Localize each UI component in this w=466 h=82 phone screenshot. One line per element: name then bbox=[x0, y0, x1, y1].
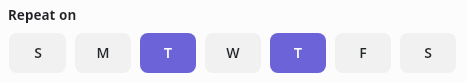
staticText: M bbox=[96, 43, 110, 62]
staticText: S bbox=[424, 43, 432, 62]
staticText: W bbox=[226, 43, 240, 62]
button[interactable]: Saturday, not selected bbox=[400, 33, 456, 73]
button[interactable]: Thursday, selected bbox=[270, 33, 326, 73]
staticText: T bbox=[294, 43, 302, 62]
staticText: T bbox=[164, 43, 172, 62]
staticText: Repeat on bbox=[8, 6, 77, 24]
button[interactable]: Tuesday, selected bbox=[140, 33, 196, 73]
staticText: F bbox=[359, 43, 367, 62]
button[interactable]: Sunday, not selected bbox=[9, 33, 66, 73]
staticText: S bbox=[34, 43, 42, 62]
button[interactable]: Friday, not selected bbox=[335, 33, 391, 73]
button[interactable]: Wednesday, not selected bbox=[205, 33, 261, 73]
button[interactable]: Monday, not selected bbox=[75, 33, 131, 73]
